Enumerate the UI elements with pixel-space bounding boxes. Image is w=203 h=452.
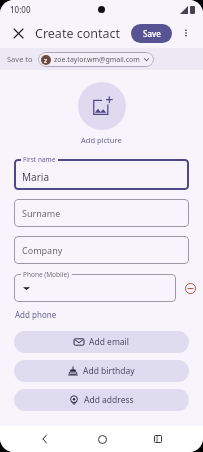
staticText: Phone (Mobile) xyxy=(23,270,70,279)
staticText: Save to xyxy=(7,54,33,64)
staticText: Save xyxy=(143,28,161,39)
staticText: Add email xyxy=(89,336,129,348)
staticText: zoe.taylor.wm@gmail.com xyxy=(54,55,140,65)
button[interactable]: Save xyxy=(131,24,172,43)
button[interactable]: Home xyxy=(91,428,113,450)
button[interactable]: Remove phone xyxy=(181,279,199,297)
button[interactable]: Maria xyxy=(14,159,189,190)
staticText: Add address xyxy=(84,394,134,406)
staticText: Surname xyxy=(22,207,61,219)
staticText: Create contact xyxy=(35,25,121,42)
button[interactable]: Z xyxy=(38,52,154,67)
button[interactable]: Company xyxy=(14,236,189,264)
button[interactable]: Add birthday xyxy=(14,360,189,382)
staticText: 10:00 xyxy=(10,4,31,15)
button[interactable]: Add address xyxy=(14,389,189,411)
button[interactable] xyxy=(14,274,176,302)
button[interactable]: Close xyxy=(8,23,28,43)
button[interactable]: More options xyxy=(177,24,195,42)
staticText: Company xyxy=(22,244,63,256)
button[interactable]: Add email xyxy=(14,331,189,353)
button[interactable]: Recent apps xyxy=(147,428,169,450)
button[interactable]: Back xyxy=(34,428,56,450)
button[interactable]: Add phone xyxy=(14,306,58,323)
button[interactable]: Add picture xyxy=(78,82,126,130)
staticText: Maria xyxy=(22,170,49,184)
button[interactable]: Add picture xyxy=(81,135,122,145)
staticText: First name xyxy=(23,155,56,164)
button[interactable]: Surname xyxy=(14,199,189,227)
staticText: Add birthday xyxy=(83,365,135,377)
staticText: Z xyxy=(44,57,48,64)
